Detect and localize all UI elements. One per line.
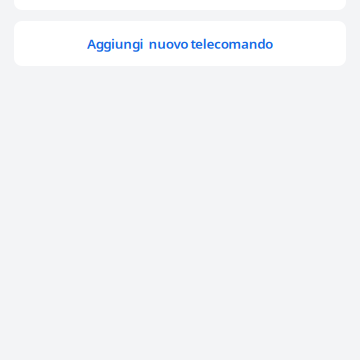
button[interactable]: Aggiungi nuovo telecomando	[14, 21, 346, 66]
staticText: Aggiungi nuovo telecomando	[87, 35, 273, 52]
